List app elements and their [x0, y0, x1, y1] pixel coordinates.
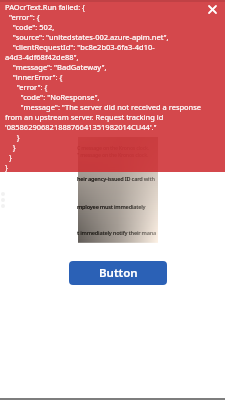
staticText: PAOcrText.Run failed: { "error": { "code… [5, 2, 204, 172]
staticText: " message on the Kronos clock. [77, 151, 149, 158]
staticText: mployee must immediately repo [77, 203, 157, 211]
staticText: heir agency-issued ID card with th [77, 175, 157, 183]
staticText: t immediately notify their mana [77, 229, 157, 237]
button[interactable]: Close [203, 0, 221, 18]
staticText: Button [99, 265, 138, 281]
button[interactable]: Button [69, 261, 167, 285]
